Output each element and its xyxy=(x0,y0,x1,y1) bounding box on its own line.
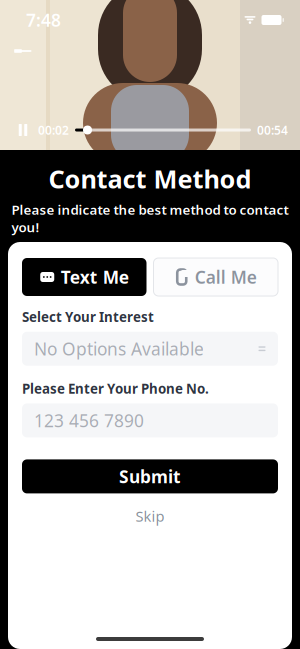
staticText: Text Me xyxy=(61,265,129,288)
button[interactable]: 123 456 7890 xyxy=(22,403,278,437)
staticText: Please indicate the best method to conta… xyxy=(11,201,288,236)
button[interactable]: Pause xyxy=(12,120,34,140)
staticText: Contact Method xyxy=(48,162,251,196)
staticText: 00:54 xyxy=(257,122,288,138)
staticText: Skip xyxy=(135,506,164,526)
button[interactable]: Text Me xyxy=(22,258,146,296)
staticText: Select Your Interest xyxy=(22,308,154,326)
button[interactable]: No Options Available xyxy=(22,332,278,366)
staticText: 7:48 xyxy=(26,8,61,31)
staticText: Please Enter Your Phone No. xyxy=(22,380,209,397)
button[interactable]: Skip xyxy=(117,501,182,531)
staticText: Call Me xyxy=(195,265,257,288)
staticText: 123 456 7890 xyxy=(34,409,144,432)
button[interactable]: Back xyxy=(6,36,40,66)
button[interactable]: Call Me xyxy=(153,258,278,296)
button[interactable]: Submit xyxy=(22,459,278,493)
staticText: Submit xyxy=(119,465,181,488)
staticText: 00:02 xyxy=(38,122,69,138)
staticText: No Options Available xyxy=(34,337,204,360)
